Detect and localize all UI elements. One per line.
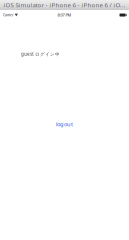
staticText: guest ログイン中: [21, 51, 60, 57]
button[interactable]: logout: [0, 120, 129, 128]
staticText: 8:07 PM: [57, 12, 71, 18]
staticText: iOS Simulator - iPhone 6 - iPhone 6 / iO…: [3, 1, 125, 9]
staticText: Carrier: [3, 13, 13, 17]
staticText: logout: [56, 120, 73, 128]
